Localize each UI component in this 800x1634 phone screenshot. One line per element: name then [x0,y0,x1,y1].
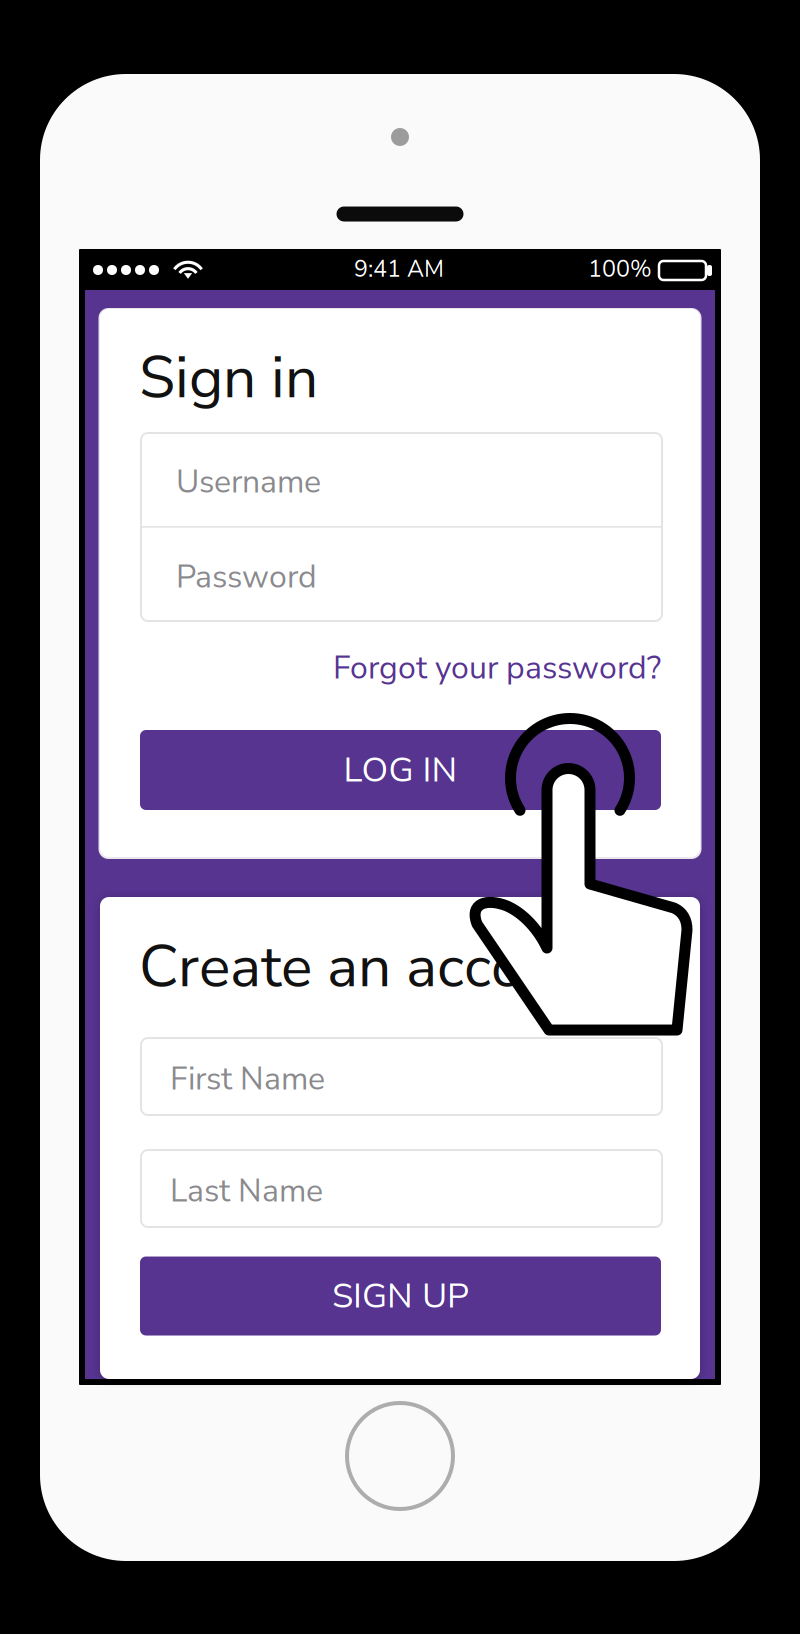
staticText: 100% [588,253,652,285]
button[interactable]: SIGN UP [140,1256,661,1335]
staticText: 9:41 AM [354,253,444,285]
staticText: Password [176,555,317,599]
staticText: Username [176,460,321,504]
button[interactable]: LOG IN [140,730,661,810]
staticText: Sign in [139,338,318,418]
staticText: SIGN UP [332,1272,469,1320]
staticText: Forgot your password? [333,646,661,690]
button[interactable]: Forgot your password? [261,642,661,694]
staticText: Create an account [139,927,611,1007]
staticText: LOG IN [343,746,457,794]
staticText: First Name [170,1057,325,1101]
staticText: Last Name [170,1169,323,1213]
